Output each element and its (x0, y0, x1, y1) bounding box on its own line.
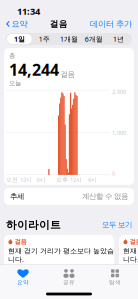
staticText: 현재 걷기 거리가 평소보다 높았습니다. (123, 247, 138, 263)
button[interactable]: 요약 (0, 265, 46, 289)
button[interactable]: 데이터 추가 (86, 17, 136, 30)
staticText: 걸음 (14, 238, 26, 245)
staticText: 계산할 수 없음 (82, 192, 128, 201)
staticText: 1,000 (112, 129, 126, 136)
staticText: 데이터 추가 (90, 19, 132, 29)
staticText: 추세 (10, 192, 24, 201)
staticText: 요약 (17, 279, 29, 286)
staticText: 탐색 (109, 279, 121, 286)
staticText: 공유 (63, 279, 75, 286)
staticText: 1년 (113, 35, 124, 43)
button[interactable]: 1년 (106, 34, 131, 44)
button[interactable]: 모두 보기 (102, 221, 132, 229)
button[interactable]: 6개월 (81, 34, 106, 44)
staticText: 하이라이트 (6, 219, 61, 231)
button[interactable]: 1주 (32, 34, 57, 44)
staticText: 6시 (88, 176, 97, 183)
staticText: 6시 (36, 176, 45, 183)
staticText: 걸음 (60, 70, 74, 78)
staticText: 오늘 (9, 79, 21, 87)
staticText: 2,000 (112, 88, 126, 95)
staticText: 1일 (14, 35, 25, 43)
staticText: 1개월 (60, 35, 78, 43)
staticText: 걸음 (129, 238, 138, 245)
staticText: 오후 12시 (56, 176, 82, 183)
staticText: 0 (112, 169, 115, 177)
staticText: 6개월 (85, 35, 103, 43)
staticText: 총 (9, 52, 15, 59)
button[interactable]: 탐색 (92, 265, 138, 289)
staticText: 현재 걷기 거리가 평소보다 높았습니다. (8, 247, 114, 263)
button[interactable]: 걸음 (4, 235, 114, 268)
staticText: 모두 보기 (102, 221, 132, 229)
staticText: 요약 (11, 19, 27, 29)
staticText: 걸음 (50, 19, 68, 29)
button[interactable]: 요약 (2, 17, 31, 30)
button[interactable]: 추세 (0, 188, 134, 205)
button[interactable]: 1일 (7, 34, 32, 44)
button[interactable]: 1개월 (57, 34, 81, 44)
button[interactable]: 공유 (46, 265, 92, 289)
staticText: 14,244 (9, 59, 59, 79)
staticText: 1주 (39, 35, 50, 43)
staticText: 오전 12시 (6, 176, 32, 183)
button[interactable]: 걸음 (119, 235, 138, 268)
staticText: 11:34 (17, 5, 40, 17)
